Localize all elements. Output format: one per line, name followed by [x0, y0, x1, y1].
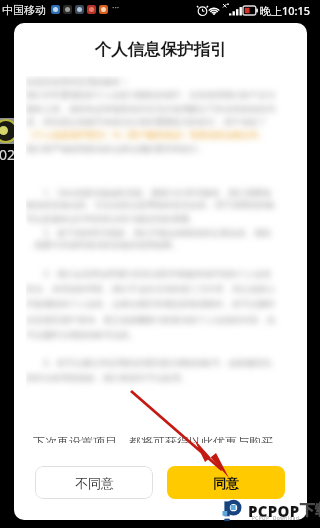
staticText: 《个人信息保护指引》与《用户服务协议》等相关的法律文件。	[26, 130, 267, 141]
staticText: 服务之前，请您务必审慎阅读并且充分地理解以下的全部条款的内	[26, 104, 276, 115]
staticText: 我们将严格按照相关的法律法规的要求来执行。	[26, 144, 207, 155]
staticText: ···	[112, 1, 120, 13]
staticText: 、相册与存储等相关的设备的使用权限。	[26, 240, 181, 251]
staticText: 容，特别是以加粗字体标识出来的重要提示的部分，其中包括了	[26, 117, 267, 128]
staticText: 同意	[213, 475, 239, 491]
staticText: 我们非常重视您的个人信息与隐私的保护。在您使用我们的产品与	[26, 90, 276, 101]
button[interactable]: 不同意	[35, 466, 153, 499]
staticText: 开披露您的个人信息，法律法规另有规定的情形除外。您可以随时	[26, 299, 276, 310]
staticText: 安全，未经您的同意，我们不会向任何的第三方共享、转让或者公	[26, 284, 276, 295]
staticText: 中国移动	[2, 3, 46, 17]
staticText: 2、基于您的明示授权，我们可能会获取您的位置信息、相机	[26, 227, 272, 239]
staticText: 下次再设置项目，都将可获得以此优惠与购买	[33, 437, 273, 443]
staticText: 4、您可以通过本应用的设置页面注销您的账号，或者撤回先	[26, 357, 272, 369]
staticText: 在设置页面中查询、更正或者删除与您相关的个人信息的内容，也	[26, 315, 276, 326]
staticText: PCPOP Download	[252, 515, 300, 521]
staticText: PCPOP	[248, 501, 300, 521]
staticText: 下载	[300, 501, 320, 520]
staticText: 1、为向您提供基础的浏览、搜索与分享等服务，我们需要收	[26, 187, 272, 199]
staticText: 02	[0, 145, 16, 164]
staticText: 前作出的同意授权，我们将及时予以处理。	[26, 373, 190, 384]
staticText: 不同意	[75, 475, 114, 491]
button[interactable]: 同意	[167, 466, 285, 499]
staticText: 欢迎您使用本应用的服务！	[26, 77, 130, 88]
staticText: 个人信息保护指引	[14, 39, 307, 60]
staticText: 3、我们会采用业界通行的安全防护措施来保护您的个人信息	[26, 268, 272, 280]
staticText: 号以及服务运行时的安全性与稳定性的需要。	[26, 214, 198, 225]
staticText: 可以随时注销您的账号信息。	[26, 330, 138, 341]
staticText: 晚上10:15	[260, 3, 311, 18]
staticText: 集您的设备信息、日志信息以及网络的状态信息，用于保障您的账	[26, 200, 276, 211]
